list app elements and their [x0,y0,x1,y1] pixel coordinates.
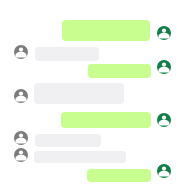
button[interactable]: Your profile picture [157,164,171,178]
button[interactable]: Message you sent [62,20,150,41]
button[interactable]: Contact profile picture [14,148,28,162]
button[interactable]: Message you sent [88,64,151,78]
button[interactable]: Your profile picture [157,113,171,127]
button[interactable]: Message you sent [61,112,151,128]
button[interactable]: Message you sent [87,169,151,182]
button[interactable]: Contact profile picture [14,45,28,59]
button[interactable]: Contact profile picture [14,131,28,145]
button[interactable]: Your profile picture [157,26,171,40]
button[interactable]: Your profile picture [157,60,171,74]
button[interactable]: Contact profile picture [14,89,28,103]
